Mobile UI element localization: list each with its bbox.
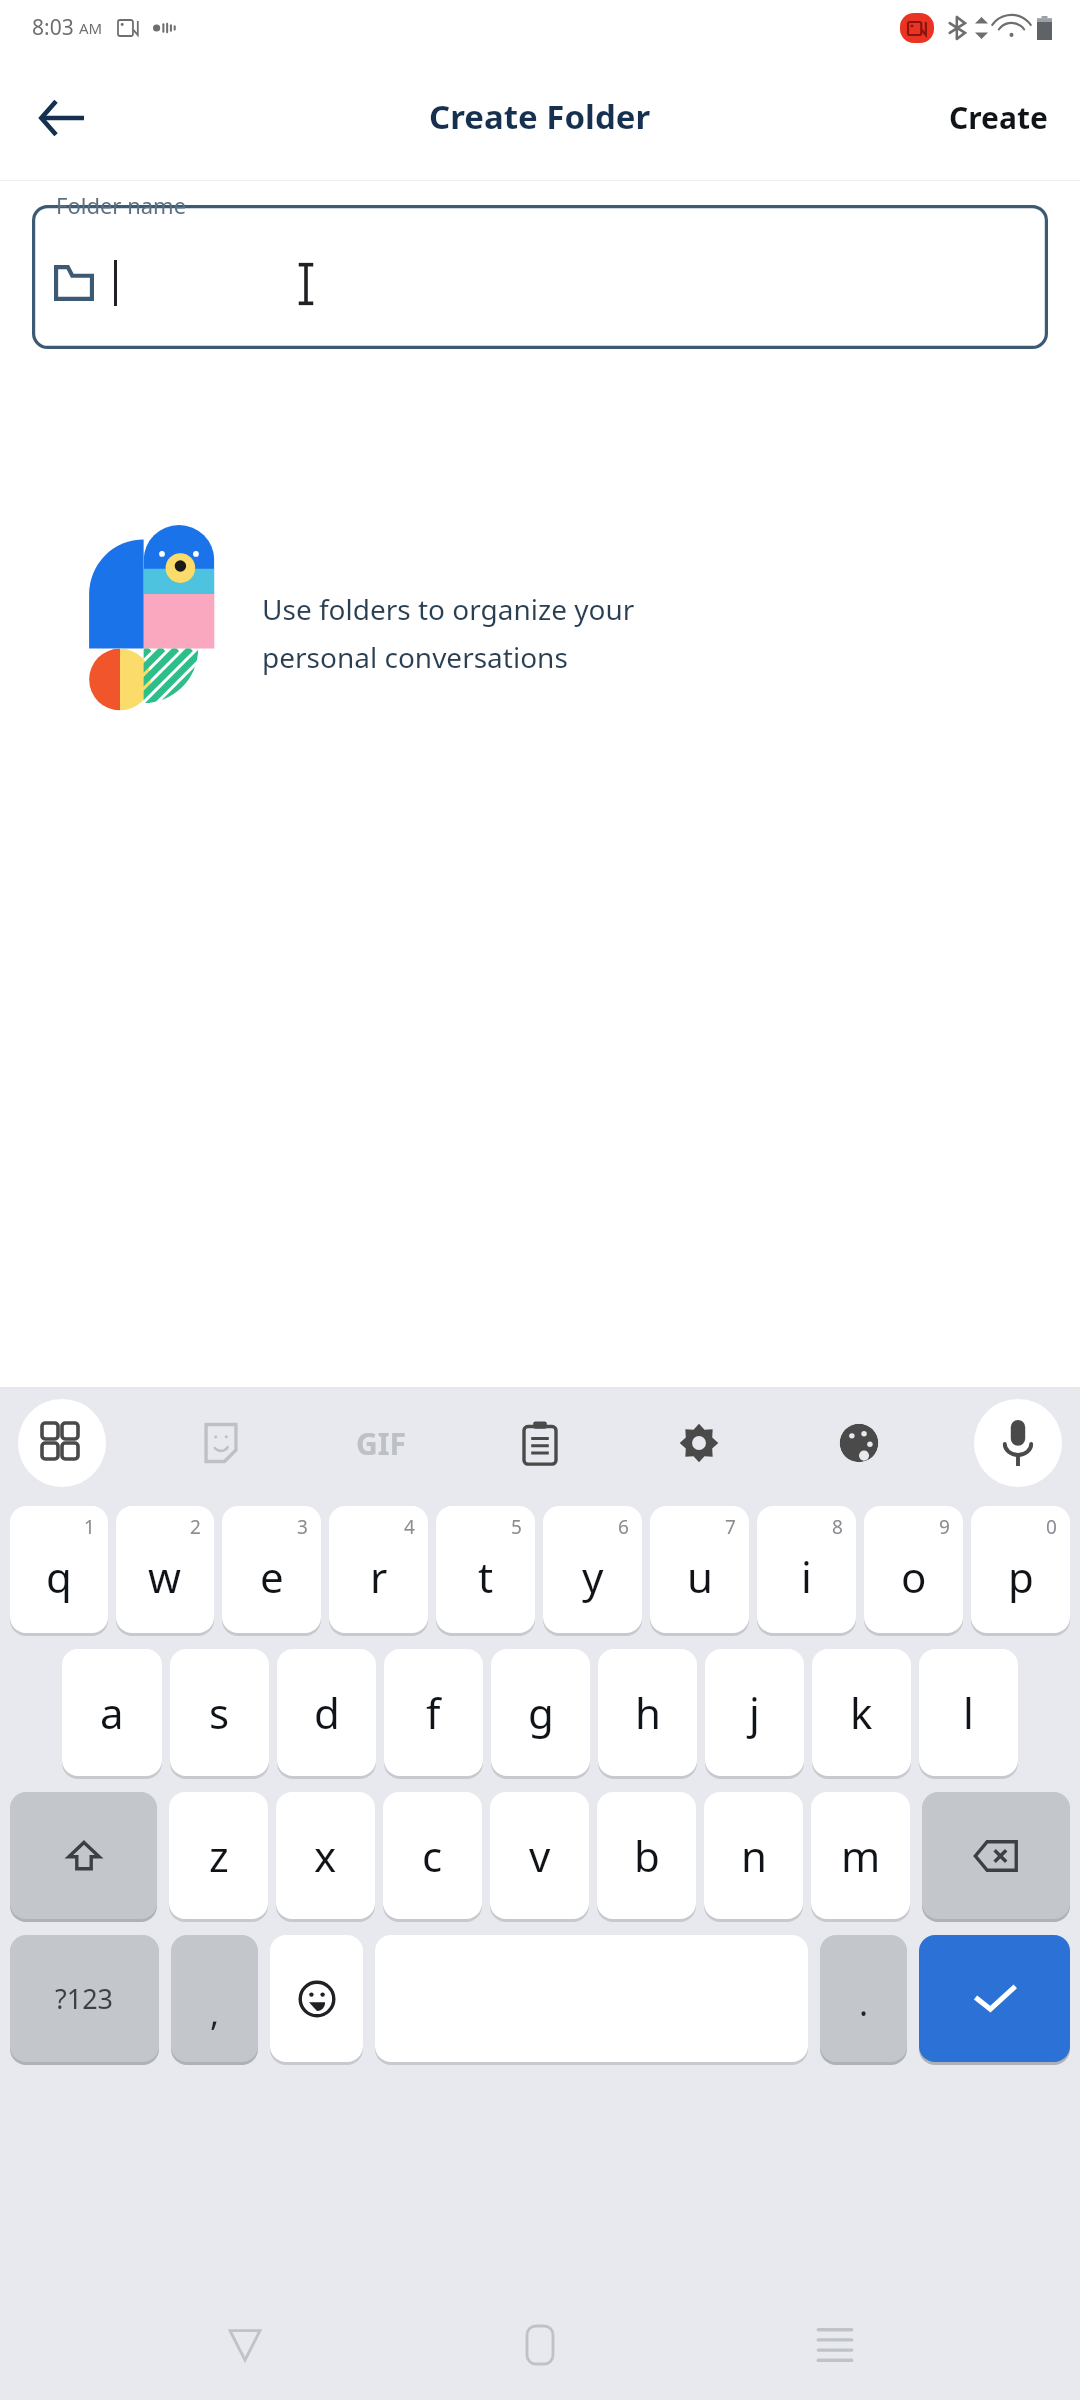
- staticText: ,: [210, 1990, 220, 2036]
- staticText: 8:03: [32, 13, 74, 42]
- staticText: 9: [939, 1514, 950, 1540]
- staticText: z: [209, 1827, 229, 1884]
- staticText: Folder name: [56, 190, 187, 220]
- staticText: .: [859, 1980, 869, 2026]
- staticText: n: [741, 1827, 767, 1884]
- staticText: i: [801, 1548, 812, 1605]
- staticText: ?123: [55, 1980, 114, 2017]
- button[interactable]: m: [811, 1792, 910, 1919]
- button[interactable]: Backspace: [922, 1792, 1070, 1919]
- staticText: m: [841, 1827, 881, 1884]
- button[interactable]: h: [598, 1649, 697, 1776]
- staticText: f: [426, 1684, 441, 1741]
- button[interactable]: Theme: [815, 1399, 903, 1487]
- staticText: b: [634, 1827, 660, 1884]
- staticText: q: [46, 1548, 72, 1605]
- staticText: e: [260, 1548, 284, 1605]
- button[interactable]: z: [169, 1792, 268, 1919]
- button[interactable]: Enter: [919, 1935, 1070, 2062]
- staticText: c: [422, 1827, 443, 1884]
- button[interactable]: b: [597, 1792, 696, 1919]
- button[interactable]: Back: [195, 2295, 295, 2395]
- button[interactable]: s: [170, 1649, 269, 1776]
- button[interactable]: x: [276, 1792, 375, 1919]
- button[interactable]: Create: [931, 85, 1066, 150]
- button[interactable]: GIF: [337, 1399, 425, 1487]
- staticText: s: [209, 1684, 230, 1741]
- button[interactable]: 7: [650, 1506, 749, 1633]
- staticText: a: [100, 1684, 124, 1741]
- staticText: k: [850, 1684, 873, 1741]
- button[interactable]: 4: [329, 1506, 428, 1633]
- staticText: h: [635, 1684, 661, 1741]
- button[interactable]: 9: [864, 1506, 963, 1633]
- button[interactable]: 2: [116, 1506, 214, 1633]
- staticText: 6: [618, 1514, 629, 1540]
- button[interactable]: ?123: [10, 1935, 159, 2062]
- button[interactable]: n: [704, 1792, 803, 1919]
- staticText: t: [478, 1548, 494, 1605]
- staticText: 3: [297, 1514, 308, 1540]
- staticText: u: [687, 1548, 713, 1605]
- staticText: d: [314, 1684, 340, 1741]
- button[interactable]: Shift: [10, 1792, 157, 1919]
- button[interactable]: Stickers: [177, 1399, 265, 1487]
- button[interactable]: j: [705, 1649, 804, 1776]
- button[interactable]: Voice input: [974, 1399, 1062, 1487]
- button[interactable]: 8: [757, 1506, 856, 1633]
- staticText: l: [963, 1684, 974, 1741]
- staticText: g: [528, 1684, 554, 1741]
- staticText: 0: [1046, 1514, 1057, 1540]
- button[interactable]: 1: [10, 1506, 108, 1633]
- staticText: GIF: [356, 1423, 406, 1464]
- button[interactable]: v: [490, 1792, 589, 1919]
- button[interactable]: Switch keyboard: [18, 1399, 106, 1487]
- button[interactable]: .: [820, 1935, 907, 2062]
- button[interactable]: Clipboard: [496, 1399, 584, 1487]
- button[interactable]: 6: [543, 1506, 642, 1633]
- staticText: Create: [949, 97, 1048, 138]
- staticText: j: [749, 1684, 760, 1741]
- staticText: w: [148, 1548, 182, 1605]
- button[interactable]: 3: [222, 1506, 321, 1633]
- staticText: 4: [404, 1514, 415, 1540]
- staticText: Use folders to organize your: [262, 590, 635, 628]
- button[interactable]: Back: [22, 78, 102, 158]
- button[interactable]: ,: [171, 1935, 258, 2062]
- staticText: 2: [190, 1514, 201, 1540]
- staticText: p: [1008, 1548, 1034, 1605]
- staticText: 7: [725, 1514, 736, 1540]
- button[interactable]: a: [62, 1649, 162, 1776]
- staticText: AM: [79, 18, 103, 38]
- staticText: o: [901, 1548, 927, 1605]
- staticText: x: [314, 1827, 337, 1884]
- button[interactable]: f: [384, 1649, 483, 1776]
- button[interactable]: Settings: [655, 1399, 743, 1487]
- button[interactable]: l: [919, 1649, 1018, 1776]
- button[interactable]: k: [812, 1649, 911, 1776]
- button[interactable]: c: [383, 1792, 482, 1919]
- staticText: 8: [832, 1514, 843, 1540]
- button[interactable]: 0: [971, 1506, 1070, 1633]
- button[interactable]: Emoji: [270, 1935, 363, 2062]
- staticText: personal conversations: [262, 638, 568, 676]
- button[interactable]: d: [277, 1649, 376, 1776]
- staticText: Create Folder: [429, 94, 651, 139]
- staticText: y: [582, 1548, 604, 1605]
- button[interactable]: 5: [436, 1506, 535, 1633]
- button[interactable]: Home: [490, 2295, 590, 2395]
- staticText: 5: [511, 1514, 522, 1540]
- staticText: r: [370, 1548, 388, 1605]
- staticText: 1: [84, 1514, 95, 1540]
- button[interactable]: Recents: [785, 2295, 885, 2395]
- button[interactable]: g: [491, 1649, 590, 1776]
- button[interactable]: Folder name: [32, 201, 1048, 349]
- staticText: v: [529, 1827, 551, 1884]
